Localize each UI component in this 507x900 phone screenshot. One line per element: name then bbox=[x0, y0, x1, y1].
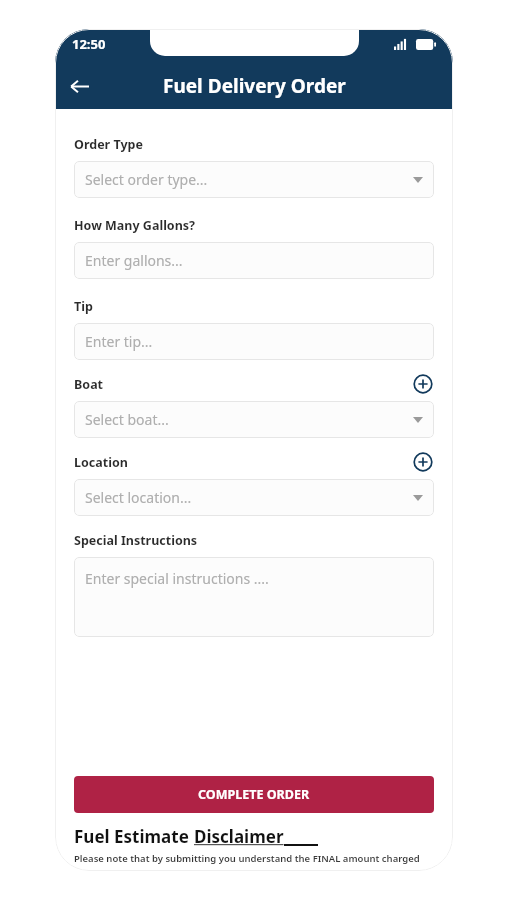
staticText: Tip bbox=[74, 298, 93, 315]
button[interactable]: Enter gallons... bbox=[74, 242, 434, 279]
staticText: Boat bbox=[74, 376, 104, 393]
staticText: 12:50 bbox=[72, 35, 106, 53]
button[interactable]: COMPLETE ORDER bbox=[74, 776, 434, 813]
staticText: How Many Gallons? bbox=[74, 217, 196, 234]
staticText: COMPLETE ORDER bbox=[198, 786, 310, 803]
staticText: Enter gallons... bbox=[85, 251, 183, 270]
staticText: Location bbox=[74, 454, 128, 471]
button[interactable]: Enter tip... bbox=[74, 323, 434, 360]
staticText: Order Type bbox=[74, 136, 143, 153]
button[interactable]: Add bbox=[412, 373, 434, 395]
staticText: Please note that by submitting you under… bbox=[74, 852, 434, 865]
staticText: Select boat... bbox=[85, 410, 169, 429]
staticText: Enter special instructions .... bbox=[85, 569, 269, 588]
button[interactable]: Add bbox=[412, 451, 434, 473]
button[interactable]: Select order type... bbox=[74, 161, 434, 198]
button[interactable]: Select boat... bbox=[74, 401, 434, 438]
staticText: Enter tip... bbox=[85, 332, 153, 351]
button[interactable]: Enter special instructions .... bbox=[74, 557, 434, 637]
staticText: Fuel Estimate bbox=[74, 825, 194, 848]
staticText: Select location... bbox=[85, 488, 192, 507]
button[interactable]: Select location... bbox=[74, 479, 434, 516]
button[interactable]: Back bbox=[63, 70, 95, 102]
staticText: Fuel Delivery Order bbox=[163, 73, 346, 99]
staticText: Select order type... bbox=[85, 170, 208, 189]
staticText: Disclaimer bbox=[194, 825, 284, 848]
staticText: Special Instructions bbox=[74, 532, 198, 549]
